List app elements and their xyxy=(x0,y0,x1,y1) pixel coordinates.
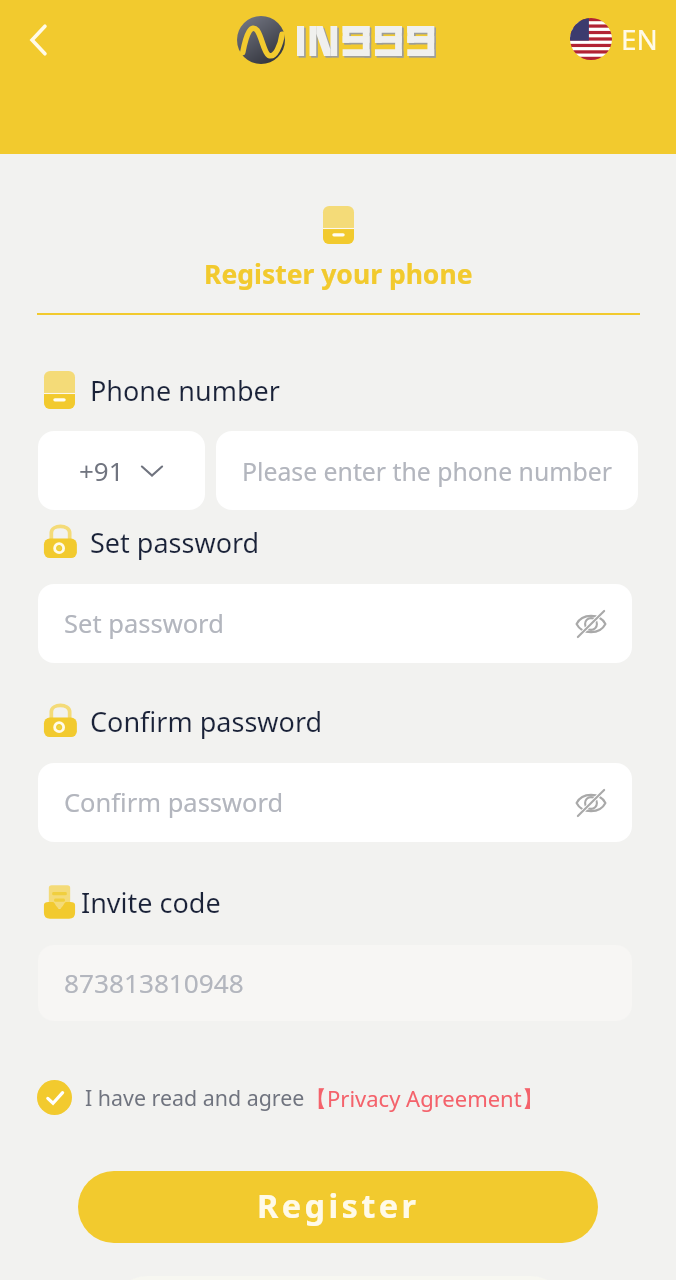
staticText: Set password xyxy=(90,524,260,561)
button[interactable]: I have read and agree xyxy=(85,1080,305,1115)
button[interactable]: 873813810948 xyxy=(38,945,632,1021)
staticText: +91 xyxy=(79,453,124,488)
staticText: Register xyxy=(257,1183,420,1227)
staticText: 873813810948 xyxy=(64,965,244,1001)
staticText: Set password xyxy=(64,606,224,641)
staticText: EN xyxy=(621,20,658,58)
button[interactable]: Confirm password xyxy=(38,763,632,842)
staticText: Confirm password xyxy=(90,703,323,740)
staticText: Confirm password xyxy=(64,785,284,820)
button[interactable]: Please enter the phone number xyxy=(216,431,638,510)
staticText: Register your phone xyxy=(204,256,473,292)
button[interactable]: I agree checkbox xyxy=(37,1080,72,1115)
staticText: Phone number xyxy=(90,372,280,409)
staticText: Invite code xyxy=(81,884,221,921)
button[interactable]: Country code +91 xyxy=(38,431,205,510)
staticText: 【Privacy Agreement】 xyxy=(305,1083,544,1113)
button[interactable]: 【Privacy Agreement】 xyxy=(305,1080,544,1115)
staticText: I have read and agree xyxy=(85,1083,305,1112)
button[interactable]: Back xyxy=(16,16,60,60)
button[interactable]: Register xyxy=(78,1171,598,1243)
button[interactable]: EN xyxy=(570,18,658,60)
button[interactable]: IN999 logo xyxy=(237,15,442,65)
button[interactable]: Set password xyxy=(38,584,632,663)
staticText: Please enter the phone number xyxy=(242,454,612,488)
button[interactable]: Toggle password visibility xyxy=(572,784,610,822)
button[interactable]: Toggle password visibility xyxy=(572,605,610,643)
